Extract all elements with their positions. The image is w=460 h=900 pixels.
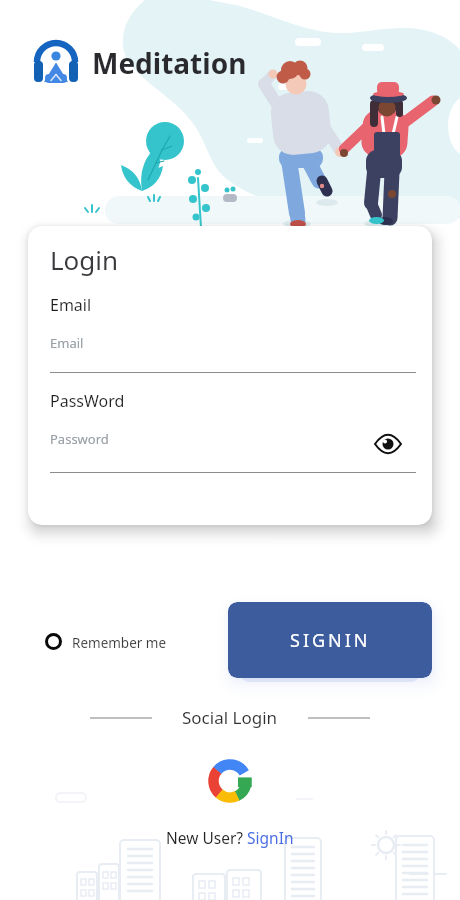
staticText: Meditation (92, 44, 247, 82)
staticText: New User? SignIn (166, 827, 294, 848)
staticText: Email (50, 334, 84, 352)
staticText: Login (50, 242, 119, 277)
staticText: Remember me (72, 634, 167, 652)
staticText: Social Login (182, 706, 278, 729)
staticText: Password (50, 430, 109, 448)
staticText: SIGNIN (290, 628, 371, 653)
staticText: PassWord (50, 390, 125, 412)
staticText: Email (50, 294, 92, 316)
